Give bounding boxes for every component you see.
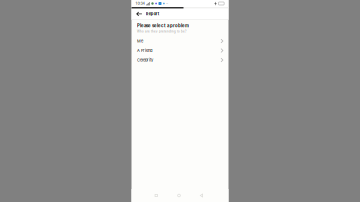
- button[interactable]: Recent apps: [152, 191, 160, 200]
- staticText: Who are they pretending to be?: [137, 30, 186, 33]
- button[interactable]: Me: [131, 36, 228, 46]
- staticText: Report: [146, 11, 159, 16]
- staticText: 10:34: [135, 1, 144, 6]
- staticText: –: [166, 1, 168, 6]
- staticText: Celebrity: [137, 58, 153, 62]
- button[interactable]: Back: [197, 191, 205, 200]
- button[interactable]: Back: [135, 9, 143, 19]
- staticText: Me: [137, 39, 143, 43]
- staticText: A Friend: [137, 48, 152, 53]
- button[interactable]: Home: [175, 191, 183, 200]
- button[interactable]: A Friend: [131, 46, 228, 55]
- staticText: Please select a problem: [137, 23, 189, 28]
- button[interactable]: Celebrity: [131, 55, 228, 65]
